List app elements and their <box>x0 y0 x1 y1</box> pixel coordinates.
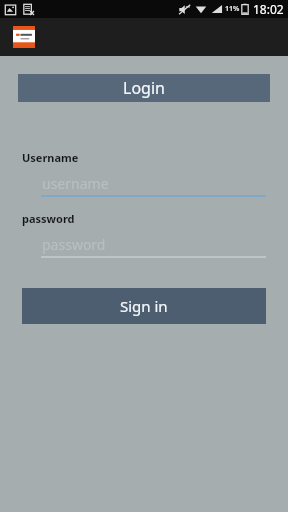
staticText: Sign in <box>120 296 168 316</box>
button[interactable]: Sign in <box>22 288 266 324</box>
button[interactable]: Username field <box>42 173 266 197</box>
staticText: password <box>42 235 106 254</box>
staticText: 18:02 <box>253 1 284 17</box>
button[interactable]: Password field <box>42 234 266 258</box>
staticText: 11% <box>225 4 240 14</box>
staticText: Username <box>22 150 79 165</box>
button[interactable]: Login <box>18 74 270 102</box>
staticText: password <box>22 211 75 226</box>
staticText: Login <box>123 77 165 99</box>
button[interactable]: App logo <box>13 26 35 48</box>
staticText: username <box>42 174 109 193</box>
